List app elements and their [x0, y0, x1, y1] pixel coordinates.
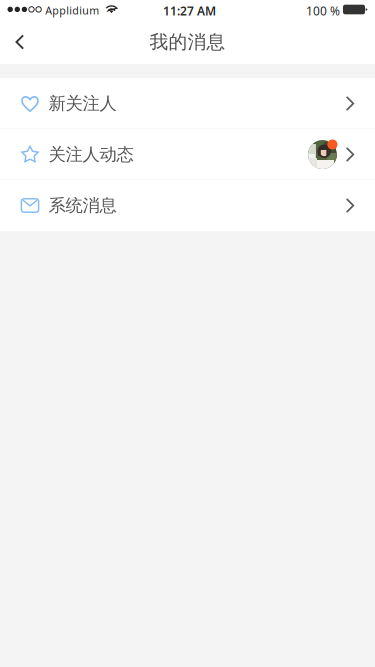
button[interactable]: Back — [0, 20, 46, 64]
staticText: 100 % — [306, 3, 340, 19]
staticText: 系统消息 — [48, 195, 116, 216]
button[interactable]: 系统消息 — [0, 180, 375, 231]
staticText: 关注人动态 — [48, 144, 133, 165]
staticText: 11:27 AM — [163, 3, 216, 19]
staticText: Applidium — [45, 3, 99, 17]
button[interactable]: 新关注人 — [0, 78, 375, 129]
staticText: 新关注人 — [48, 93, 116, 114]
button[interactable]: 关注人动态 — [0, 129, 375, 180]
staticText: 我的消息 — [149, 30, 225, 53]
